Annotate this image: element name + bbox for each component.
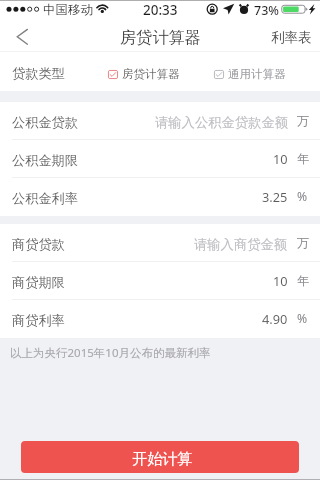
staticText: % (297, 188, 308, 205)
button[interactable]: 商贷贷款 (0, 224, 320, 262)
button[interactable]: 公积金贷款 (0, 102, 320, 140)
staticText: 利率表 (271, 29, 312, 46)
staticText: 贷款类型 (12, 65, 65, 82)
staticText: 开始计算 (132, 449, 193, 468)
staticText: 10 (273, 272, 288, 289)
staticText: 20:33 (143, 1, 178, 19)
staticText: 万 (297, 235, 310, 250)
button[interactable]: 开始计算 (21, 441, 299, 473)
staticText: 年 (297, 151, 310, 166)
staticText: 10 (273, 150, 288, 167)
staticText: 73% (254, 2, 279, 19)
button[interactable]: 商贷期限 (0, 262, 320, 300)
staticText: 商贷贷款 (12, 236, 65, 253)
button[interactable]: Back (0, 20, 44, 52)
staticText: 4.90 (262, 310, 288, 327)
button[interactable]: 商贷利率 (0, 300, 320, 338)
staticText: 请输入商贷金额 (194, 236, 288, 253)
staticText: 商贷利率 (12, 312, 65, 329)
staticText: 万 (297, 113, 310, 128)
staticText: 公积金期限 (12, 152, 78, 169)
staticText: 公积金贷款 (12, 114, 78, 131)
staticText: 请输入公积金贷款金额 (155, 114, 288, 131)
button[interactable]: 利率表 (271, 28, 312, 45)
button[interactable]: 公积金期限 (0, 140, 320, 178)
staticText: 中国移动 (43, 2, 93, 18)
staticText: 年 (297, 273, 310, 288)
staticText: 商贷期限 (12, 274, 65, 291)
button[interactable]: 公积金利率 (0, 178, 320, 216)
staticText: 房贷计算器 (122, 67, 180, 81)
staticText: 3.25 (262, 188, 288, 205)
staticText: 通用计算器 (228, 67, 286, 81)
button[interactable]: 通用计算器 (214, 67, 286, 81)
staticText: % (297, 310, 308, 327)
staticText: 房贷计算器 (120, 27, 201, 47)
button[interactable]: 房贷计算器 (108, 67, 180, 81)
staticText: 公积金利率 (12, 190, 78, 207)
staticText: 以上为央行2015年10月公布的最新利率 (10, 345, 211, 361)
